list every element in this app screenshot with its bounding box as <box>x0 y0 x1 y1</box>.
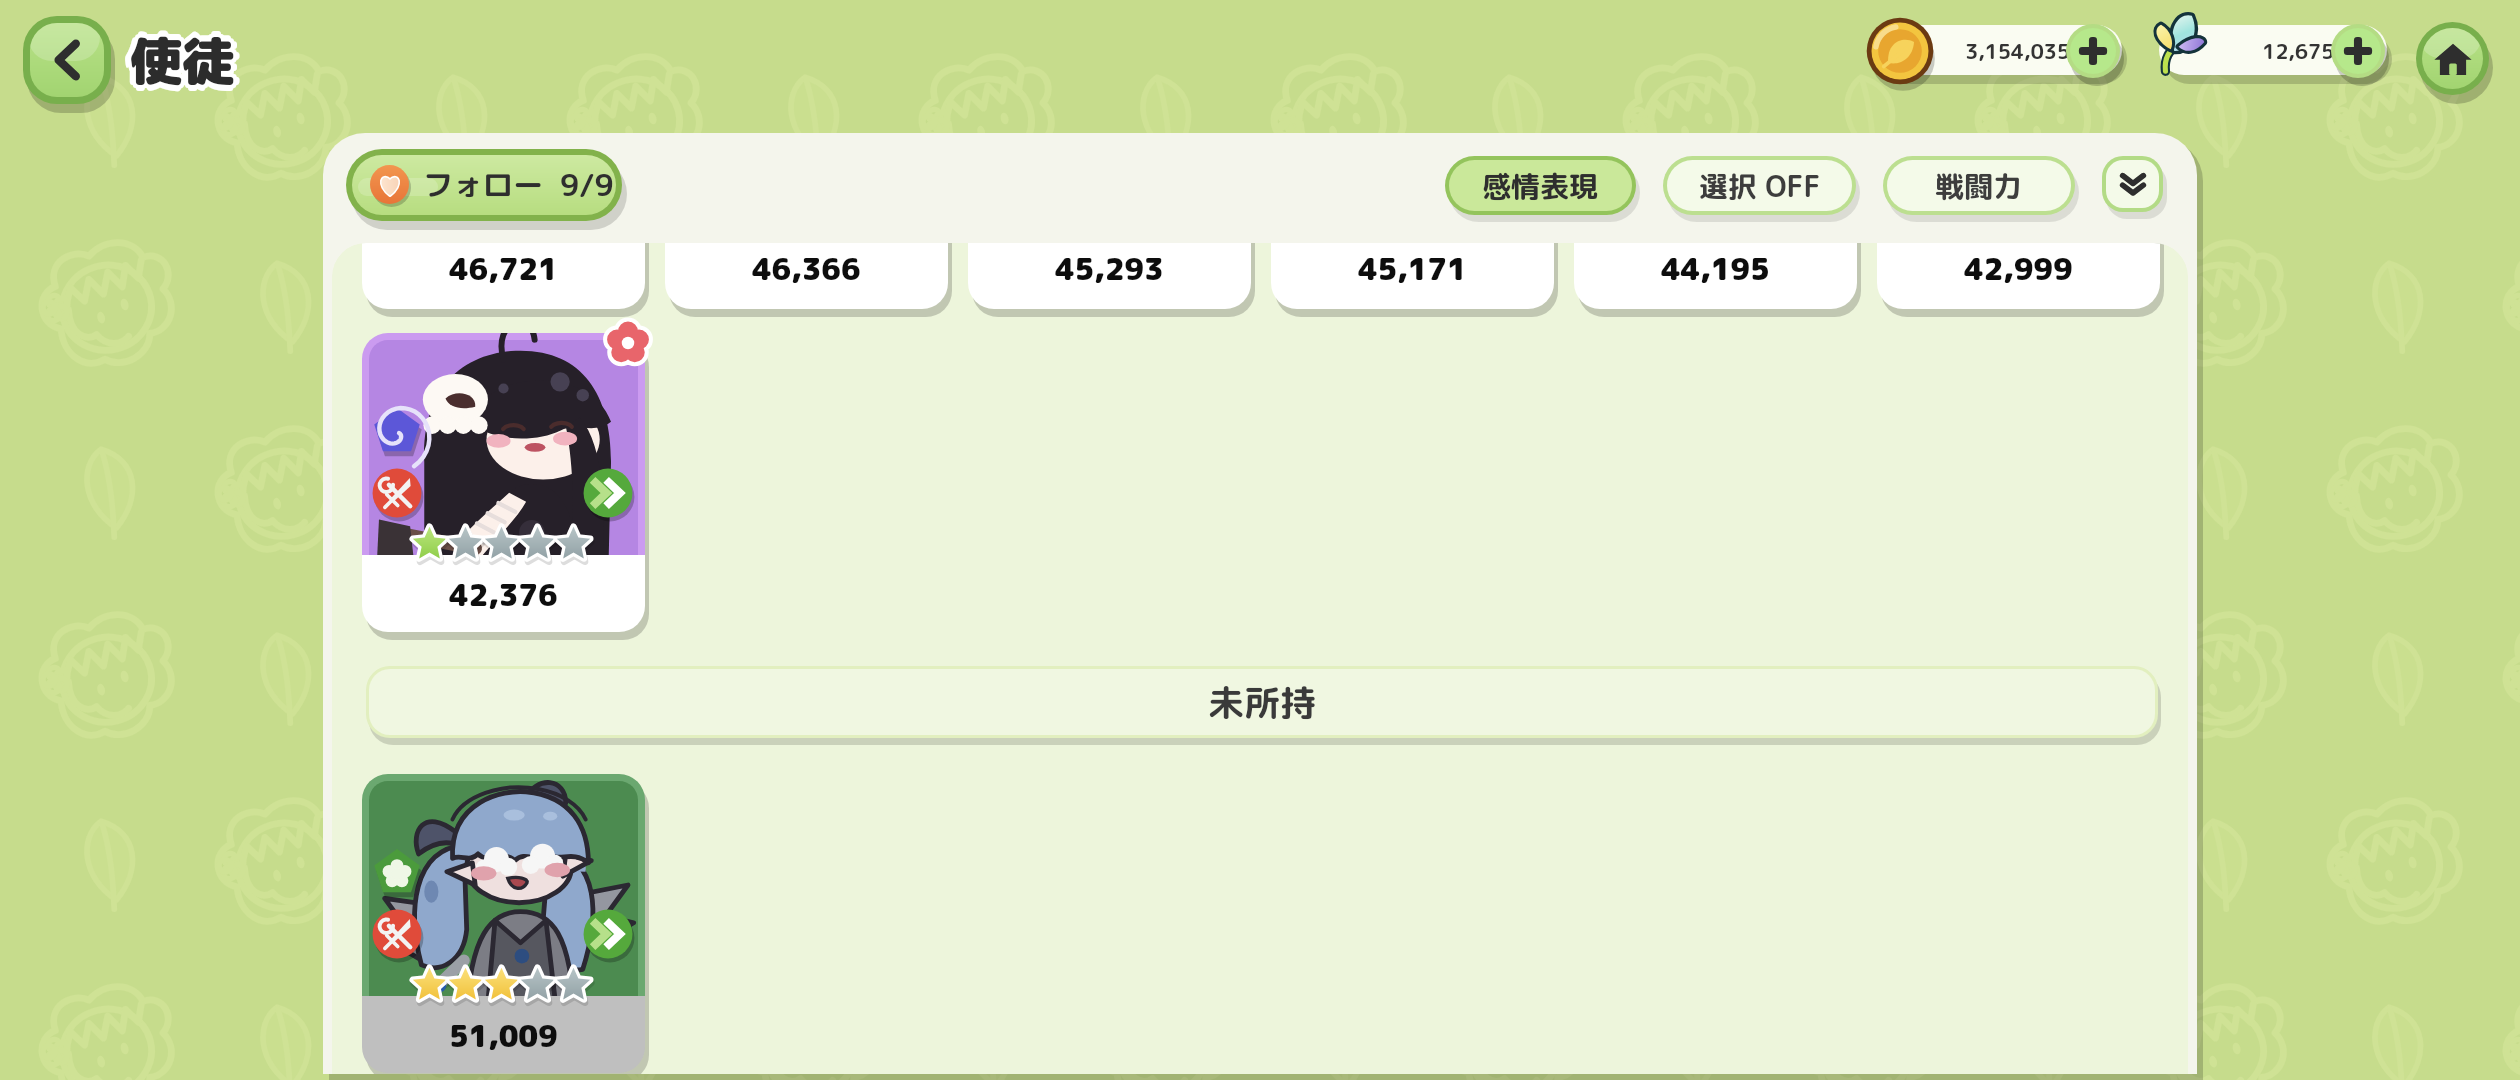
staticText: 使徒 <box>130 21 235 94</box>
staticText: 使徒 <box>133 24 238 97</box>
staticText: 44,195 <box>1661 248 1770 290</box>
staticText: 46,721 <box>449 248 558 290</box>
staticText: 感情表現 <box>1482 166 1599 206</box>
staticText: 使徒 <box>136 24 241 97</box>
staticText: 使徒 <box>124 24 229 97</box>
staticText: 使徒 <box>127 21 232 94</box>
staticText: 45,293 <box>1055 248 1164 290</box>
button[interactable]: Home <box>2416 22 2493 107</box>
staticText: 選択 OFF <box>1699 166 1821 206</box>
staticText: 使徒 <box>133 21 238 94</box>
button[interactable]: 12,675 <box>2159 25 2397 95</box>
staticText: 戦闘力 <box>1935 166 2023 206</box>
staticText: 42,999 <box>1964 248 2073 290</box>
staticText: 使徒 <box>130 24 235 97</box>
staticText: 42,376 <box>449 574 558 616</box>
staticText: 使徒 <box>127 27 232 100</box>
button[interactable]: More filters <box>2102 156 2163 222</box>
button[interactable]: 戦闘力 <box>1883 156 2075 222</box>
staticText: 使徒 <box>130 27 235 100</box>
button[interactable]: フォロー 9/9 <box>346 149 630 231</box>
button[interactable]: 3,154,035 <box>1874 25 2132 95</box>
staticText: 51,009 <box>449 1015 558 1057</box>
staticText: 46,366 <box>752 248 861 290</box>
staticText: 12,675 <box>2262 36 2335 65</box>
staticText: 使徒 <box>130 18 235 91</box>
staticText: 使徒 <box>130 30 235 103</box>
button[interactable]: 感情表現 <box>1445 156 1636 222</box>
staticText: 使徒 <box>133 27 238 100</box>
button[interactable]: 選択 OFF <box>1663 156 1856 222</box>
staticText: 使徒 <box>127 24 232 97</box>
button[interactable]: Back <box>23 16 115 116</box>
staticText: 3,154,035 <box>1965 36 2070 65</box>
staticText: フォロー 9/9 <box>423 164 614 206</box>
staticText: 45,171 <box>1358 248 1467 290</box>
staticText: 未所持 <box>1208 677 1317 727</box>
